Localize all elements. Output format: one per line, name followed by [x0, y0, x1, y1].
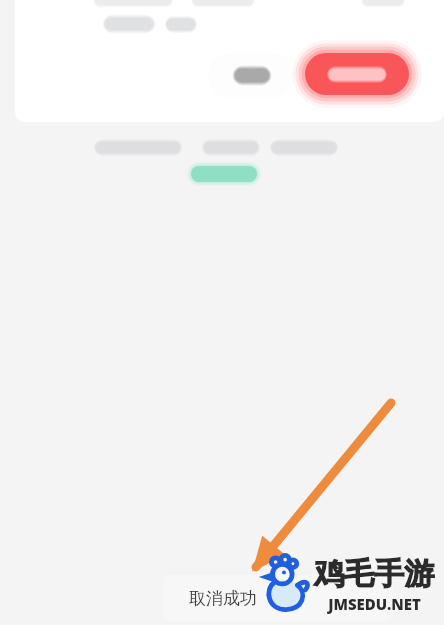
staticText: 鸡毛手游 [314, 555, 434, 593]
button[interactable] [191, 166, 259, 184]
button[interactable] [15, 0, 444, 122]
button[interactable] [301, 50, 412, 98]
staticText: JMSEDU.NET [328, 594, 421, 614]
staticText: 取消成功 [189, 588, 257, 609]
button[interactable]: 取消成功 [163, 575, 393, 621]
button[interactable] [208, 53, 295, 98]
